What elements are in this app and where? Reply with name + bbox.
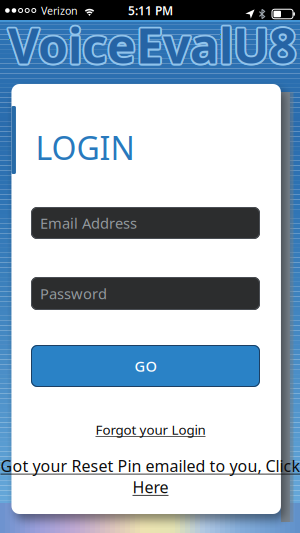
staticText: VoiceEvalU8 — [8, 11, 296, 75]
staticText: VoiceEvalU8 — [6, 13, 294, 77]
staticText: VoiceEvalU8 — [10, 14, 298, 78]
staticText: GO — [134, 356, 156, 376]
staticText: Forgot your Login — [95, 421, 205, 438]
staticText: VoiceEvalU8 — [7, 15, 295, 78]
button[interactable]: Password — [31, 277, 260, 310]
staticText: Here — [132, 476, 168, 498]
staticText: Password — [40, 284, 107, 303]
staticText: VoiceEvalU8 — [10, 12, 298, 76]
button[interactable]: Got your Reset Pin emailed to you, Click — [0, 455, 300, 498]
button[interactable]: Forgot your Login — [95, 421, 205, 438]
staticText: VoiceEvalU8 — [6, 14, 294, 78]
staticText: 5:11 PM — [128, 2, 173, 18]
button[interactable]: GO — [31, 345, 260, 387]
staticText: VoiceEvalU8 — [9, 15, 297, 78]
staticText: VoiceEvalU8 — [10, 13, 298, 77]
button[interactable]: Email Address — [31, 207, 260, 239]
staticText: Verizon — [41, 3, 78, 18]
staticText: Got your Reset Pin emailed to you, Click — [0, 455, 300, 476]
staticText: VoiceEvalU8 — [7, 12, 295, 75]
staticText: LOGIN — [35, 126, 134, 169]
staticText: Email Address — [40, 213, 137, 233]
staticText: VoiceEvalU8 — [9, 12, 297, 75]
staticText: VoiceEvalU8 — [8, 13, 296, 77]
staticText: VoiceEvalU8 — [8, 15, 296, 79]
staticText: VoiceEvalU8 — [6, 12, 294, 76]
